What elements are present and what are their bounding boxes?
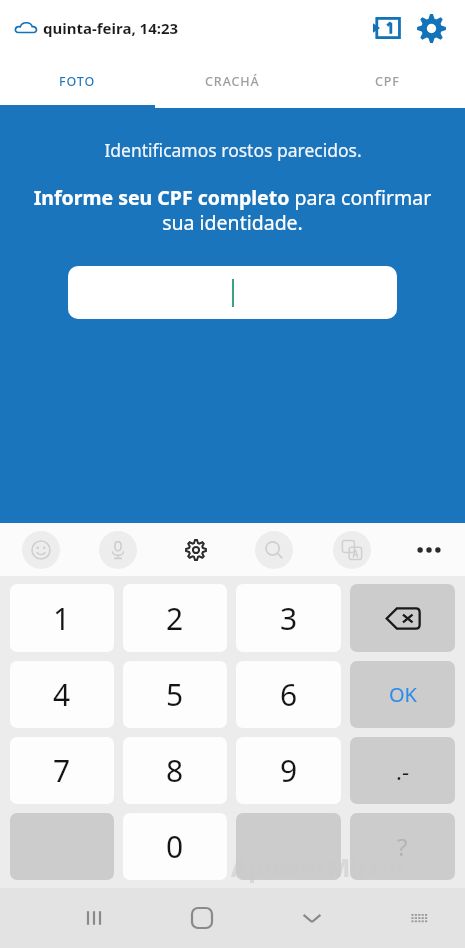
button[interactable]: Entrada por voz	[99, 531, 137, 569]
button[interactable]: Traduzir	[333, 531, 371, 569]
staticText: .-	[396, 756, 409, 786]
staticText: 4	[53, 674, 71, 715]
button[interactable]: Voltar	[289, 895, 335, 941]
staticText: 3	[280, 598, 298, 639]
button[interactable]: Ocultar teclado	[399, 898, 439, 938]
staticText: Identificamos rostos parecidos.	[104, 138, 362, 162]
button[interactable]: CPF	[310, 55, 465, 108]
button[interactable]: Início	[179, 895, 225, 941]
button[interactable]: Pesquisar	[255, 531, 293, 569]
button[interactable]: 8	[123, 737, 227, 804]
button[interactable]: 9	[236, 737, 341, 804]
button[interactable]: Emoji	[22, 531, 60, 569]
staticText: 8	[166, 750, 184, 791]
button[interactable]: OK	[350, 661, 455, 728]
button[interactable]: 5	[123, 661, 227, 728]
button[interactable]: Fila de atendimento	[365, 7, 407, 49]
button[interactable]: Configurações do teclado	[177, 531, 215, 569]
staticText: 0	[166, 826, 184, 867]
staticText: ?	[397, 830, 408, 863]
staticText: 5	[166, 674, 184, 715]
button[interactable]: Configurações	[409, 6, 453, 50]
button[interactable]: Apagar	[350, 584, 455, 652]
button[interactable]: 2	[123, 584, 227, 652]
staticText: ApowerMirror	[231, 850, 407, 884]
button[interactable]: 7	[10, 737, 114, 804]
button[interactable]: 3	[236, 584, 341, 652]
staticText: CPF	[375, 73, 400, 90]
staticText: OK	[389, 681, 417, 708]
button[interactable]: FOTO	[0, 55, 155, 108]
staticText: Informe seu CPF completo para confirmar …	[28, 184, 437, 236]
button[interactable]: Campo CPF	[68, 266, 397, 319]
staticText: quinta-feira, 14:23	[43, 18, 179, 38]
staticText: CRACHÁ	[205, 73, 260, 90]
staticText: 1	[53, 598, 71, 639]
staticText: FOTO	[59, 73, 96, 90]
button[interactable]: Recentes	[72, 896, 116, 940]
staticText: 6	[280, 674, 298, 715]
button[interactable]: Mais opções	[411, 532, 447, 568]
staticText: 9	[280, 750, 298, 791]
staticText: 2	[166, 598, 184, 639]
button[interactable]: 1	[10, 584, 114, 652]
staticText: 7	[53, 750, 71, 791]
button[interactable]: Ponto e traço	[350, 737, 455, 804]
button[interactable]: 6	[236, 661, 341, 728]
button[interactable]: 0	[123, 813, 227, 880]
button[interactable]: 4	[10, 661, 114, 728]
button[interactable]: CRACHÁ	[155, 55, 310, 108]
